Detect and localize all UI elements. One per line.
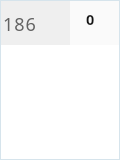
staticText: 186: [3, 12, 37, 37]
staticText: 0: [86, 9, 95, 29]
button[interactable]: 186: [1, 1, 70, 45]
button[interactable]: 0: [70, 1, 119, 45]
